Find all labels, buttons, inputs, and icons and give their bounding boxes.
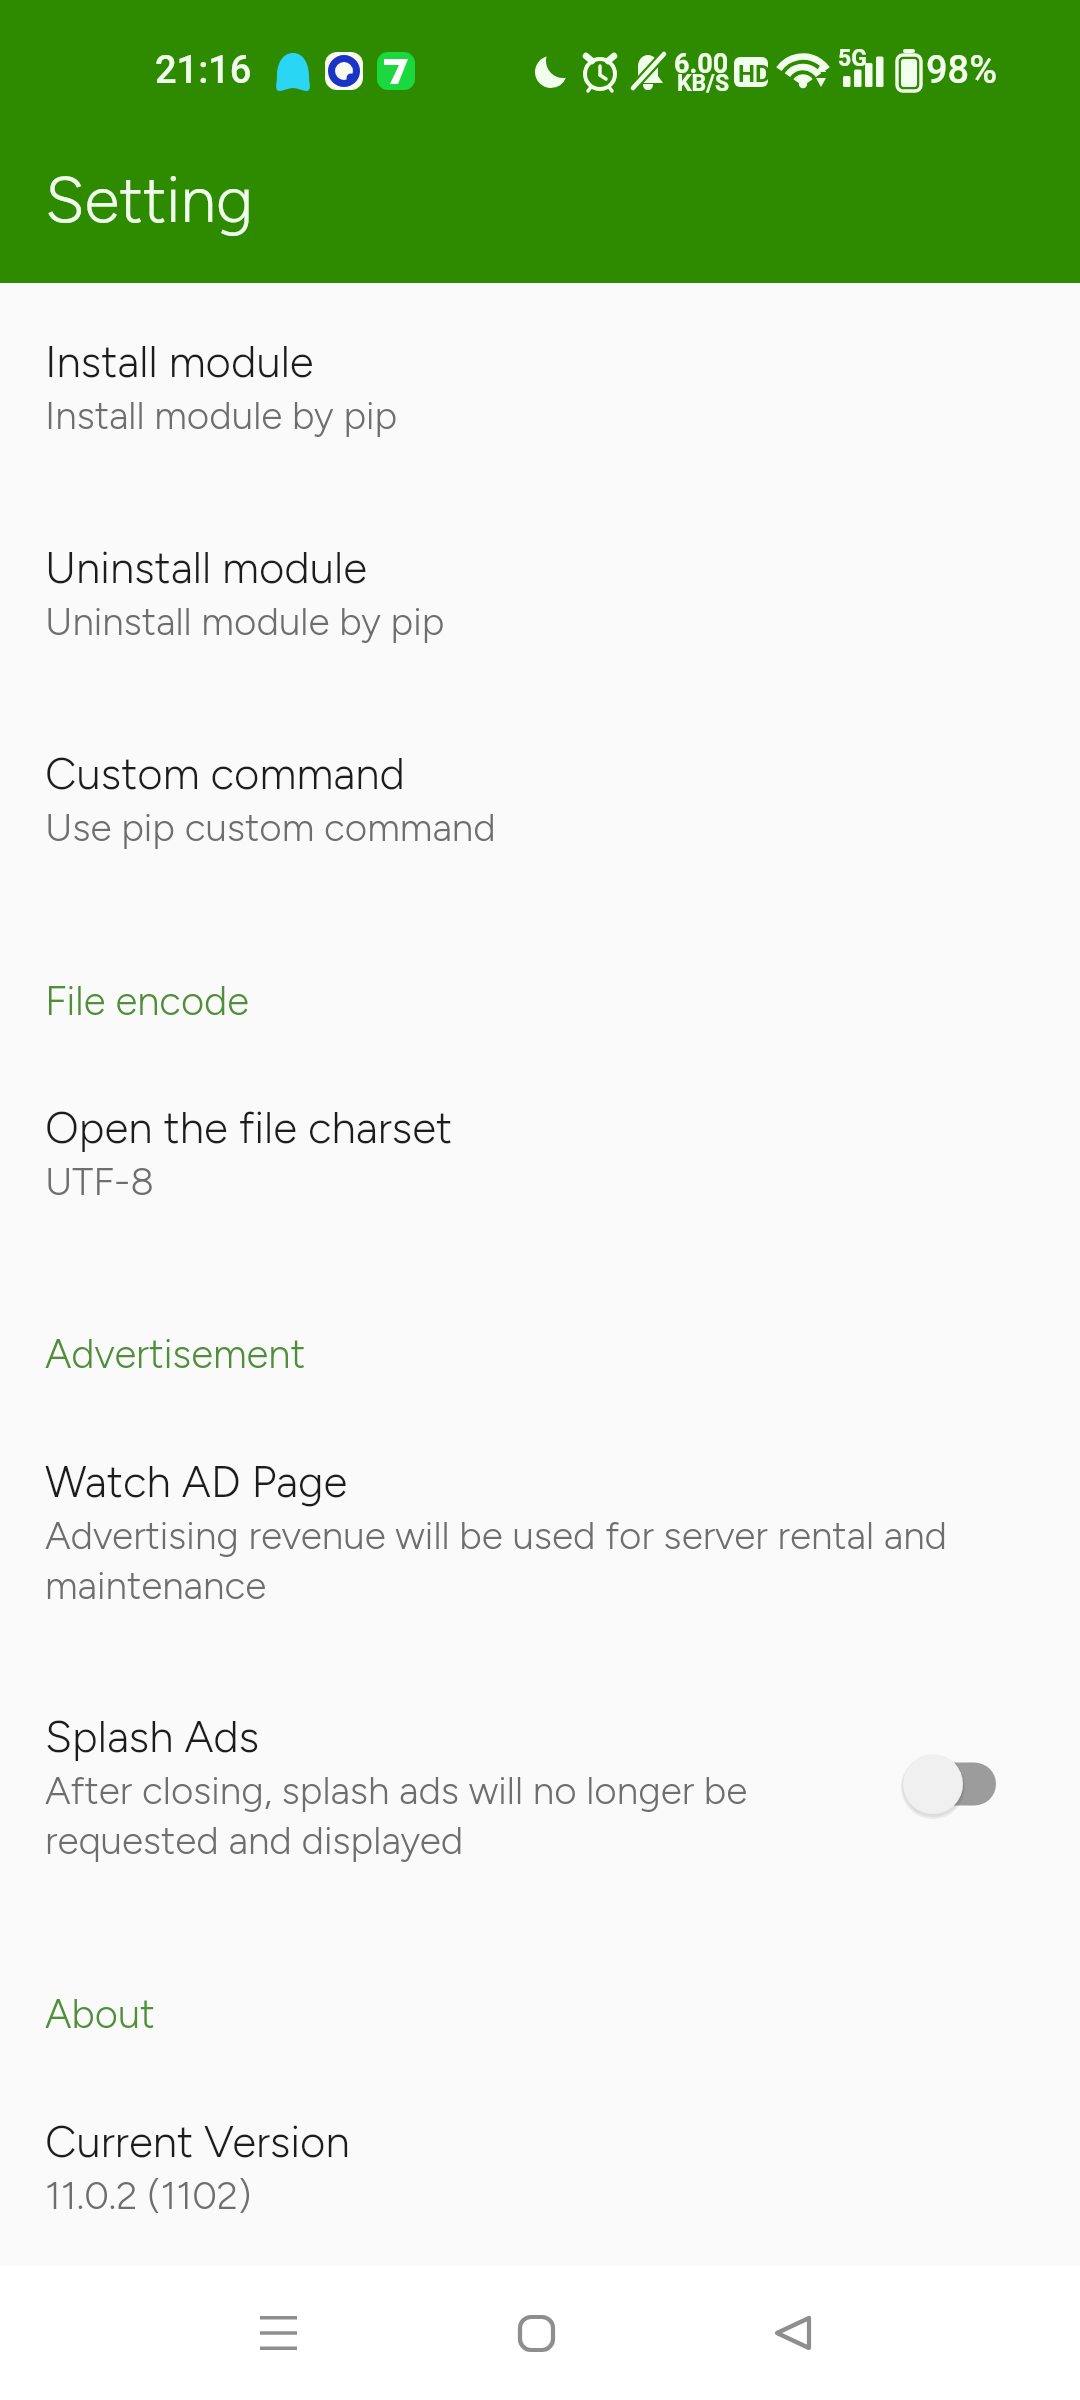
staticText: Setting bbox=[45, 161, 254, 238]
staticText: Advertisement bbox=[45, 1330, 306, 1378]
button[interactable]: Recent apps bbox=[213, 2266, 343, 2400]
staticText: Current Version bbox=[45, 2115, 350, 2168]
button[interactable]: Watch AD Page bbox=[0, 1425, 1080, 1638]
staticText: File encode bbox=[45, 977, 250, 1025]
staticText: Install module bbox=[45, 335, 314, 388]
staticText: UTF-8 bbox=[45, 1158, 155, 1204]
staticText: Install module by pip bbox=[45, 392, 398, 438]
staticText: Use pip custom command bbox=[45, 804, 496, 850]
staticText: Uninstall module by pip bbox=[45, 598, 445, 644]
button[interactable]: Back bbox=[728, 2266, 858, 2400]
staticText: Splash Ads bbox=[45, 1710, 260, 1763]
staticText: 21:16 bbox=[155, 48, 252, 93]
staticText: 11.0.2 (1102) bbox=[45, 2172, 252, 2218]
button[interactable]: Uninstall module bbox=[0, 511, 1080, 674]
button[interactable]: Install module bbox=[0, 305, 1080, 468]
button[interactable]: Current Version bbox=[0, 2085, 1080, 2248]
staticText: 5G bbox=[838, 45, 867, 72]
staticText: 98% bbox=[926, 48, 998, 93]
button[interactable]: Splash ads toggle bbox=[875, 1749, 1005, 1819]
staticText: Open the file charset bbox=[45, 1101, 453, 1154]
staticText: About bbox=[45, 1990, 155, 2038]
staticText: HD bbox=[738, 60, 771, 88]
staticText: Custom command bbox=[45, 747, 406, 800]
staticText: Watch AD Page bbox=[45, 1455, 348, 1508]
staticText: KB/S bbox=[677, 70, 730, 97]
staticText: Advertising revenue will be used for ser… bbox=[45, 1512, 1034, 1608]
button[interactable]: Splash Ads bbox=[0, 1680, 1080, 1893]
staticText: After closing, splash ads will no longer… bbox=[45, 1767, 888, 1863]
staticText: 6.00 bbox=[674, 48, 729, 80]
button[interactable]: Custom command bbox=[0, 717, 1080, 880]
button[interactable]: Home bbox=[471, 2266, 601, 2400]
staticText: Uninstall module bbox=[45, 541, 368, 594]
button[interactable]: Open the file charset bbox=[0, 1071, 1080, 1234]
